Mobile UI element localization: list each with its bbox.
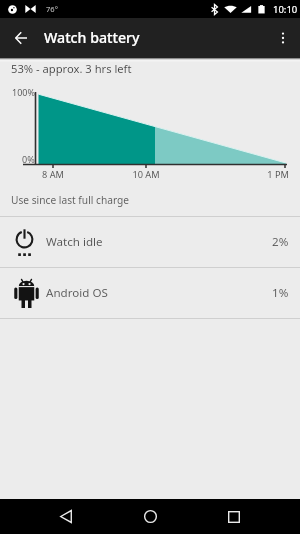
button[interactable]: Recent apps [204,499,264,534]
staticText: 1% [272,285,289,301]
staticText: 10:10 [273,3,298,16]
staticText: Watch idle [46,234,103,250]
staticText: 10 AM [126,168,166,181]
button[interactable]: Back [36,499,96,534]
staticText: Use since last full charge [11,193,130,207]
button[interactable]: Home [120,499,180,534]
button[interactable]: Android OS [0,268,300,318]
staticText: 76° [46,4,58,14]
staticText: 2% [272,234,289,250]
staticText: 0% [22,153,35,165]
staticText: Watch battery [44,28,140,47]
staticText: Android OS [46,285,108,301]
staticText: 53% - approx. 3 hrs left [11,61,132,76]
button[interactable]: Watch idle [0,217,300,267]
staticText: 100% [12,86,35,98]
staticText: 8 AM [33,168,73,181]
button[interactable]: More options [267,22,299,54]
staticText: 1 PM [258,168,298,181]
button[interactable]: Navigate up [1,18,41,58]
